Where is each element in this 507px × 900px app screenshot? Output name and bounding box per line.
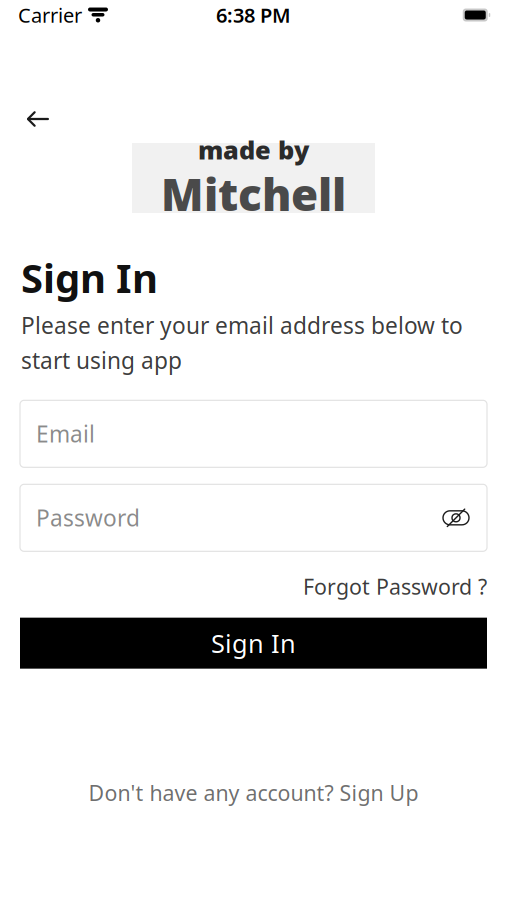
staticText: Email (36, 419, 95, 449)
staticText: Carrier (18, 2, 82, 28)
staticText: made by (198, 133, 309, 167)
button[interactable]: Back (15, 98, 61, 140)
staticText: Password (36, 503, 140, 533)
button[interactable]: Forgot Password ? (303, 568, 487, 605)
button[interactable]: Sign In (20, 618, 487, 669)
staticText: Forgot Password ? (303, 572, 487, 601)
staticText: Please enter your email address below to… (21, 310, 463, 375)
button[interactable]: Don't have any account? Sign Up (20, 773, 487, 813)
staticText: Don't have any account? Sign Up (88, 779, 418, 807)
staticText: Sign In (211, 626, 296, 660)
staticText: Mitchell (161, 165, 346, 223)
staticText: Sign In (21, 251, 158, 304)
staticText: 6:38 PM (216, 2, 291, 28)
